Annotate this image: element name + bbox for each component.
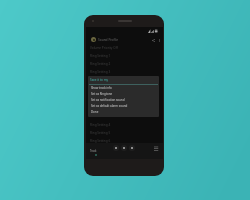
staticText: Ring Setting 5 (90, 131, 111, 135)
staticText: Done (91, 110, 99, 114)
button[interactable]: More options (156, 37, 162, 43)
button[interactable]: Show track info (88, 85, 159, 91)
staticText: Ring Setting 4 (90, 123, 111, 127)
button[interactable]: Previous (113, 145, 119, 151)
button[interactable]: Ring Setting 1 (86, 52, 163, 60)
staticText: Ring Setting 2 (90, 62, 111, 66)
button[interactable]: Play (121, 145, 127, 151)
staticText: Track (90, 149, 97, 153)
button[interactable]: Sound Profile (86, 35, 163, 44)
button[interactable]: Queue (153, 145, 159, 151)
button[interactable]: Ring Setting 6 (86, 137, 163, 145)
button[interactable]: Ring Setting 5 (86, 129, 163, 137)
button[interactable]: Share (150, 37, 156, 43)
staticText: Set as Ringtone (91, 92, 113, 96)
button[interactable]: Done (88, 109, 159, 115)
staticText: Ring Setting 3 (90, 70, 111, 74)
staticText: Ring Setting 1 (90, 54, 111, 58)
staticText: Volume Priority Off (90, 46, 118, 50)
button[interactable]: Ring Setting 3 (86, 68, 163, 76)
staticText: Sound Profile (98, 38, 119, 42)
button[interactable]: Set as default alarm sound (88, 103, 159, 109)
button[interactable]: Set as notification sound (88, 97, 159, 103)
staticText: Show track info (91, 86, 112, 90)
button[interactable]: Set as Ringtone (88, 91, 159, 97)
staticText: Set as default alarm sound (91, 104, 128, 108)
staticText: Save it to my (90, 78, 108, 82)
button[interactable]: Volume Priority Off (86, 44, 163, 52)
staticText: Ring Setting 6 (90, 139, 111, 143)
button[interactable]: Ring Setting 2 (86, 60, 163, 68)
button[interactable]: Ring Setting 4 (86, 121, 163, 129)
button[interactable]: Next (129, 145, 135, 151)
staticText: Set as notification sound (91, 98, 125, 102)
